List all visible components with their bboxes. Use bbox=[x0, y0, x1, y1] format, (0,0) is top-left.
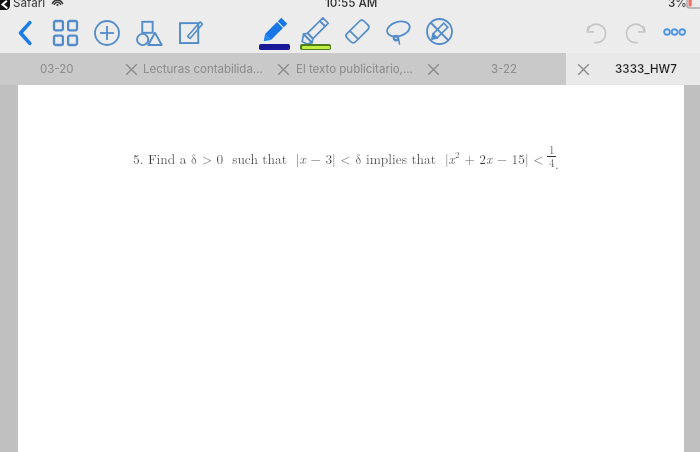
button[interactable]: Eraser bbox=[345, 19, 370, 44]
staticText: + 2x − 15| < bbox=[460, 149, 544, 168]
staticText: 2 bbox=[455, 148, 460, 161]
button[interactable]: Highlighter bbox=[300, 17, 328, 45]
button[interactable]: Lasso bbox=[386, 20, 411, 43]
staticText: El texto publicitario,... bbox=[296, 62, 413, 76]
staticText: . bbox=[555, 154, 559, 173]
button[interactable]: 3-22 bbox=[416, 53, 566, 85]
button[interactable]: Shapes bbox=[136, 21, 162, 46]
button[interactable]: Lecturas contabilida... bbox=[114, 53, 266, 85]
staticText: Safari bbox=[13, 0, 46, 10]
staticText: 1 bbox=[549, 142, 555, 158]
staticText: 03-20 bbox=[40, 62, 74, 76]
staticText: Lecturas contabilida... bbox=[143, 62, 263, 76]
staticText: 10:55 AM bbox=[325, 0, 378, 10]
button[interactable]: Redo bbox=[625, 20, 647, 44]
button[interactable]: El texto publicitario,... bbox=[266, 53, 416, 85]
button[interactable]: Compose bbox=[179, 20, 203, 44]
button[interactable]: Pen bbox=[261, 17, 288, 44]
button[interactable]: 03-20 bbox=[0, 53, 114, 85]
button[interactable]: Library bbox=[53, 20, 78, 46]
button[interactable]: 3333_HW7 bbox=[566, 53, 700, 85]
staticText: 3-22 bbox=[491, 62, 518, 76]
staticText: 5. Find a δ > 0 such that |x − 3| < δ im… bbox=[133, 149, 455, 168]
button[interactable]: Disable drawing bbox=[426, 18, 453, 45]
staticText: 4 bbox=[549, 155, 555, 171]
staticText: 3333_HW7 bbox=[615, 62, 677, 76]
button[interactable]: New note bbox=[94, 20, 120, 46]
button[interactable]: Undo bbox=[585, 20, 607, 44]
button[interactable]: Back bbox=[17, 19, 33, 47]
staticText: 3% bbox=[668, 0, 687, 10]
button[interactable]: More options bbox=[663, 27, 687, 37]
